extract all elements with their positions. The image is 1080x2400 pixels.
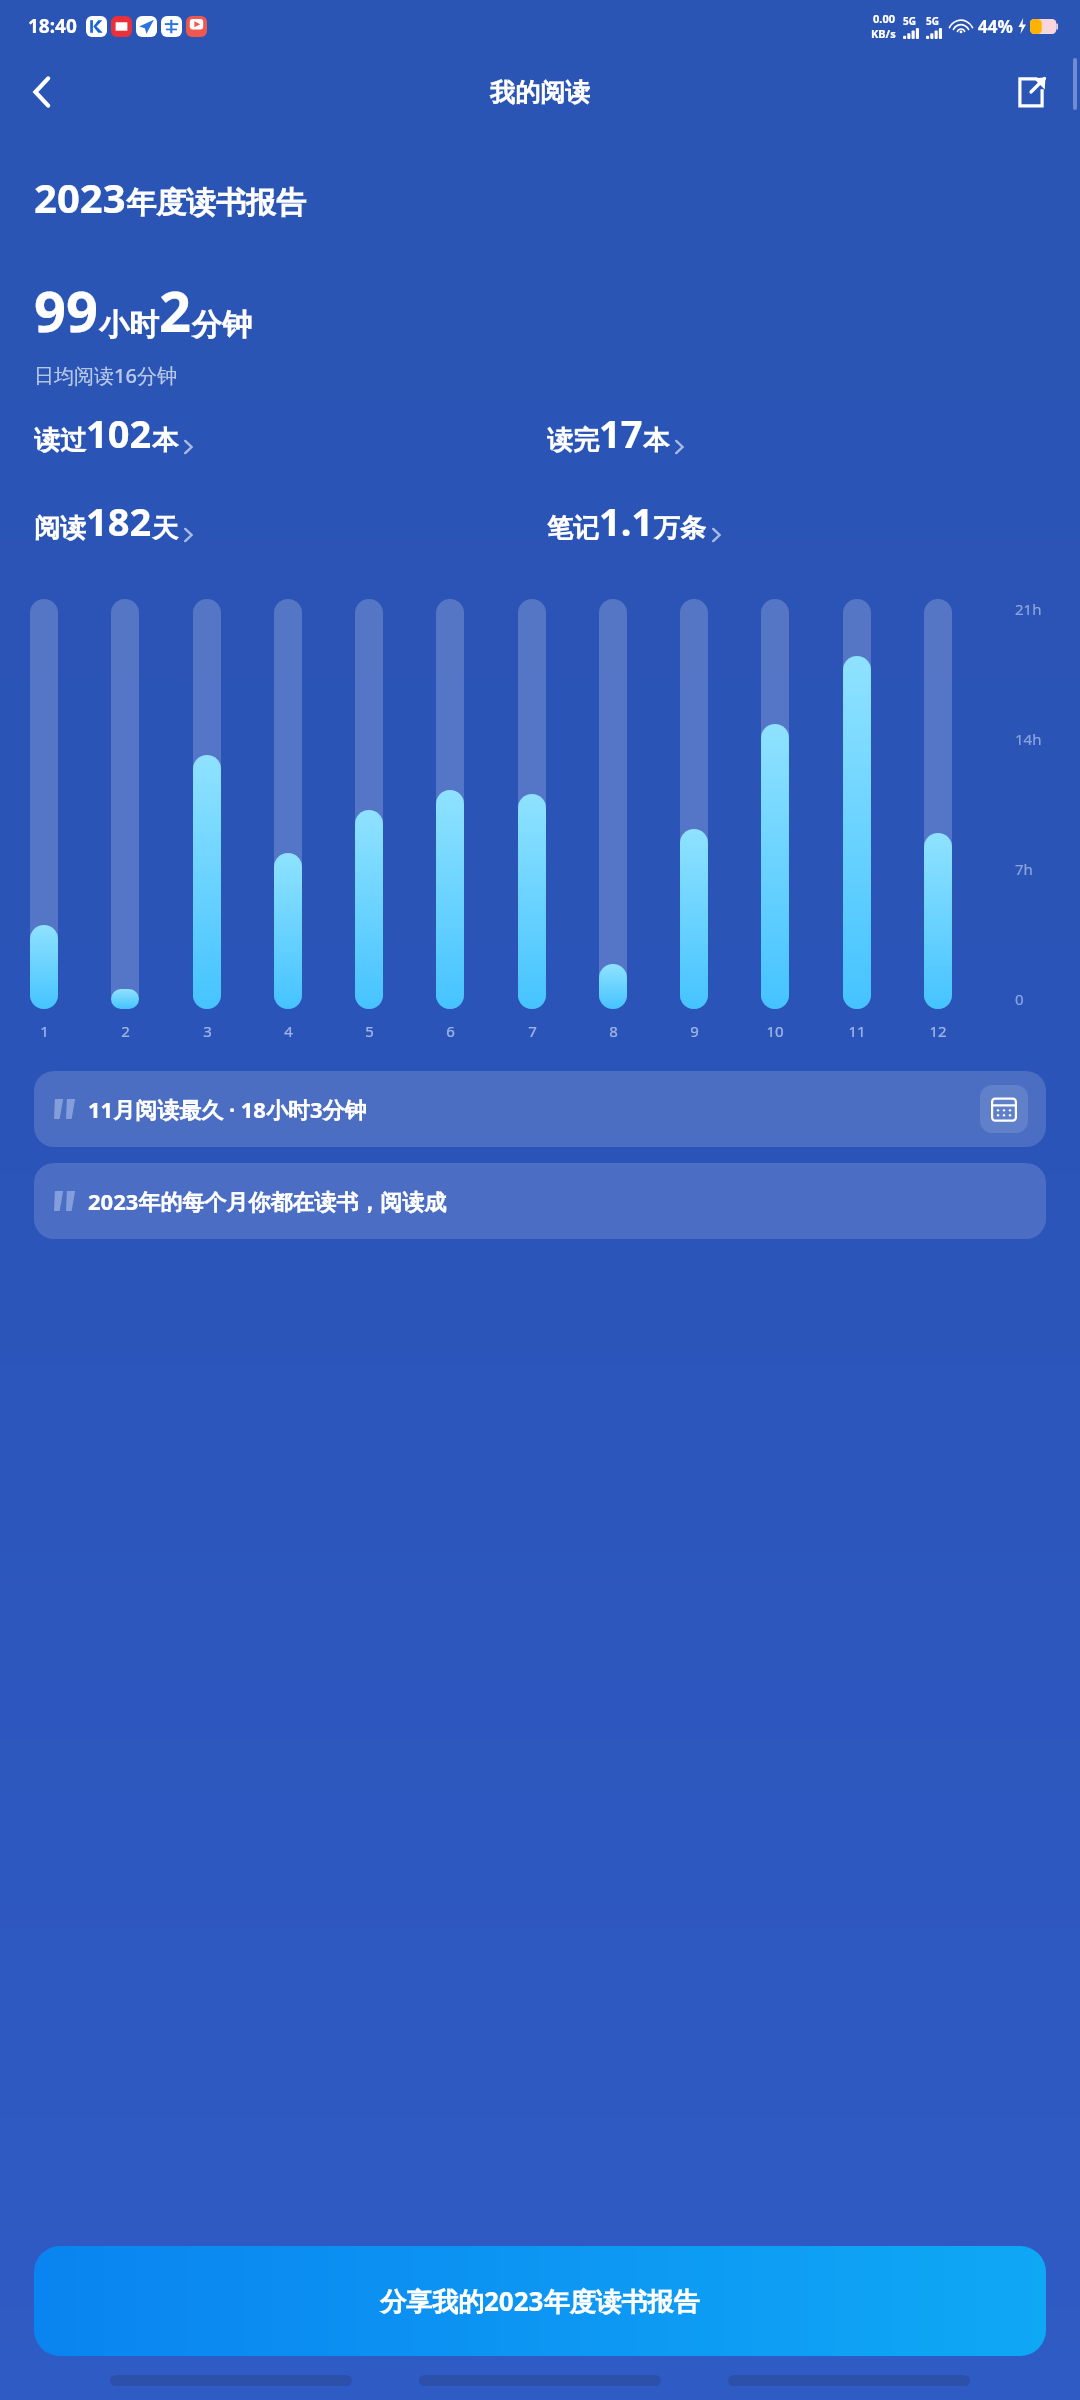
staticText: 7	[528, 1021, 537, 1041]
button[interactable]: 阅读	[34, 495, 547, 547]
staticText: 本	[152, 424, 178, 457]
staticText: 5	[365, 1021, 374, 1041]
staticText: 44%	[978, 15, 1013, 38]
staticText: 本	[643, 424, 669, 457]
staticText: 182	[86, 495, 152, 547]
staticText: 7h	[1015, 859, 1033, 879]
staticText: 0.00	[873, 11, 895, 26]
button[interactable]: 分享我的2023年度读书报告	[34, 2246, 1046, 2356]
staticText: 99	[34, 272, 99, 348]
button[interactable]: Back	[14, 64, 70, 120]
staticText: 读完	[547, 424, 599, 457]
staticText: 8	[609, 1021, 618, 1041]
staticText: 21h	[1015, 599, 1042, 619]
staticText: 0	[1015, 989, 1024, 1009]
button[interactable]: 11月阅读最久 · 18小时3分钟	[34, 1071, 1046, 1147]
staticText: 5G	[903, 14, 916, 28]
button[interactable]: Share	[1004, 65, 1058, 119]
staticText: 18:40	[28, 13, 77, 39]
staticText: 日均阅读16分钟	[34, 362, 177, 389]
button[interactable]: 读完	[547, 407, 1060, 459]
staticText: 2023	[34, 170, 126, 224]
staticText: 6	[446, 1021, 455, 1041]
staticText: 4	[284, 1021, 293, 1041]
staticText: 14h	[1015, 729, 1042, 749]
staticText: 1.1	[599, 495, 654, 547]
staticText: 10	[766, 1021, 784, 1041]
button[interactable]: 2023年的每个月你都在读书，阅读成	[34, 1163, 1046, 1239]
staticText: 17	[599, 407, 643, 459]
staticText: 年度读书报告	[126, 184, 306, 222]
staticText: 分钟	[192, 306, 252, 344]
staticText: 分享我的2023年度读书报告	[380, 2283, 700, 2319]
staticText: 9	[690, 1021, 699, 1041]
staticText: 1	[40, 1021, 49, 1041]
staticText: 3	[203, 1021, 212, 1041]
staticText: 万条	[654, 512, 706, 545]
staticText: 2	[121, 1021, 130, 1041]
staticText: 2023年的每个月你都在读书，阅读成	[88, 1186, 447, 1216]
button[interactable]: 读过	[34, 407, 547, 459]
staticText: 读过	[34, 424, 86, 457]
staticText: 阅读	[34, 512, 86, 545]
button[interactable]: 笔记	[547, 495, 1060, 547]
staticText: 12	[929, 1021, 947, 1041]
staticText: 2	[159, 272, 192, 348]
staticText: 天	[152, 512, 178, 545]
button[interactable]: Calendar	[980, 1085, 1028, 1133]
staticText: 11	[848, 1021, 866, 1041]
staticText: KB/s	[871, 26, 896, 41]
staticText: 笔记	[547, 512, 599, 545]
staticText: 我的阅读	[490, 77, 590, 108]
staticText: 5G	[926, 14, 939, 28]
staticText: 11月阅读最久 · 18小时3分钟	[88, 1094, 367, 1124]
staticText: 小时	[99, 306, 159, 344]
staticText: 102	[86, 407, 152, 459]
